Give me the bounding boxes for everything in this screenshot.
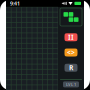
staticText: LVL 1	[66, 82, 76, 87]
button[interactable]: Restart	[64, 64, 77, 72]
staticText: 9:41	[10, 0, 20, 7]
staticText: R	[69, 63, 73, 72]
button[interactable]: Rotate	[64, 48, 77, 56]
staticText: II	[68, 33, 74, 42]
button[interactable]: Pause	[64, 33, 77, 41]
staticText: <>	[67, 48, 75, 57]
button[interactable]: LVL 1	[63, 81, 79, 87]
